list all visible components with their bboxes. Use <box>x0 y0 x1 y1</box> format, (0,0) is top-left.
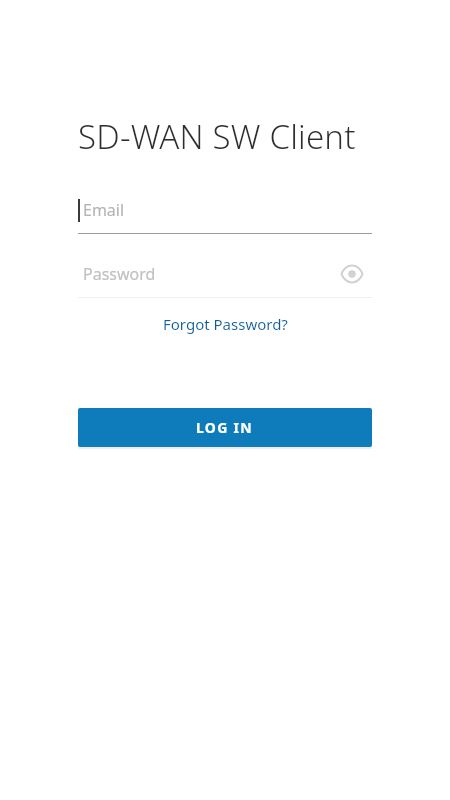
staticText: Email <box>83 199 125 221</box>
staticText: Forgot Password? <box>163 314 288 334</box>
button[interactable]: Show password <box>332 254 372 294</box>
button[interactable]: LOG IN <box>78 408 372 447</box>
staticText: Password <box>83 263 156 285</box>
staticText: SD-WAN SW Client <box>78 114 356 159</box>
button[interactable]: Forgot Password? <box>157 310 294 338</box>
staticText: LOG IN <box>196 418 254 437</box>
button[interactable]: Password <box>78 250 372 298</box>
button[interactable]: Email <box>78 186 372 234</box>
